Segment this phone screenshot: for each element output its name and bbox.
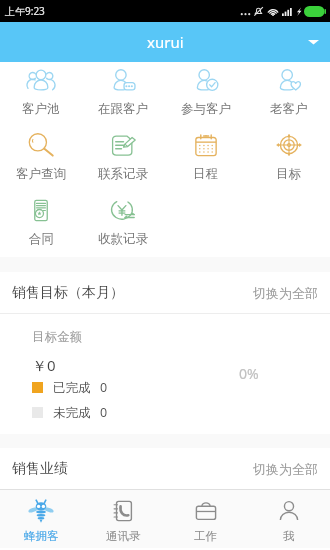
button[interactable]: 客户查询 [0, 127, 82, 192]
button[interactable]: 联系记录 [82, 127, 164, 192]
button[interactable]: 收款记录 [82, 192, 164, 257]
staticText: ￥0 [32, 355, 56, 375]
button[interactable]: 参与客户 [164, 62, 247, 127]
button[interactable]: 蜂拥客 [0, 490, 82, 548]
other: 展开 [308, 38, 319, 46]
button[interactable]: 合同 [0, 192, 82, 257]
staticText: 收款记录 [98, 231, 148, 247]
button[interactable]: xurui [0, 22, 330, 62]
staticText: 销售目标（本月） [12, 284, 124, 302]
button[interactable]: 我 [247, 490, 330, 548]
button[interactable]: 销售目标（本月） [0, 272, 330, 313]
button[interactable]: 通讯录 [82, 490, 164, 548]
staticText: 未完成 [53, 405, 91, 421]
staticText: 客户查询 [16, 166, 66, 182]
staticText: 0 [100, 379, 108, 396]
button[interactable]: 客户池 [0, 62, 82, 127]
button[interactable]: 目标 [247, 127, 330, 192]
staticText: 上午9:23 [5, 4, 45, 18]
staticText: 客户池 [22, 101, 60, 117]
staticText: 目标金额 [32, 329, 82, 345]
staticText: 切换为全部 [253, 285, 318, 301]
staticText: 切换为全部 [253, 461, 318, 477]
button[interactable]: 日程 [164, 127, 247, 192]
button[interactable]: 销售业绩 [0, 448, 330, 489]
staticText: 销售业绩 [12, 460, 68, 478]
staticText: 我 [283, 529, 295, 543]
staticText: 蜂拥客 [24, 529, 59, 543]
staticText: 0 [100, 404, 108, 421]
staticText: 已完成 [53, 380, 91, 396]
staticText: 合同 [29, 231, 54, 247]
staticText: 工作 [194, 529, 217, 543]
staticText: xurui [147, 32, 184, 52]
button[interactable]: 在跟客户 [82, 62, 164, 127]
staticText: 联系记录 [98, 166, 148, 182]
staticText: 通讯录 [106, 529, 141, 543]
staticText: 目标 [276, 166, 301, 182]
button[interactable]: 老客户 [247, 62, 330, 127]
staticText: 日程 [193, 166, 218, 182]
staticText: 参与客户 [181, 101, 231, 117]
staticText: 0% [239, 364, 259, 383]
staticText: 老客户 [270, 101, 308, 117]
button[interactable]: 工作 [164, 490, 247, 548]
staticText: 在跟客户 [98, 101, 148, 117]
